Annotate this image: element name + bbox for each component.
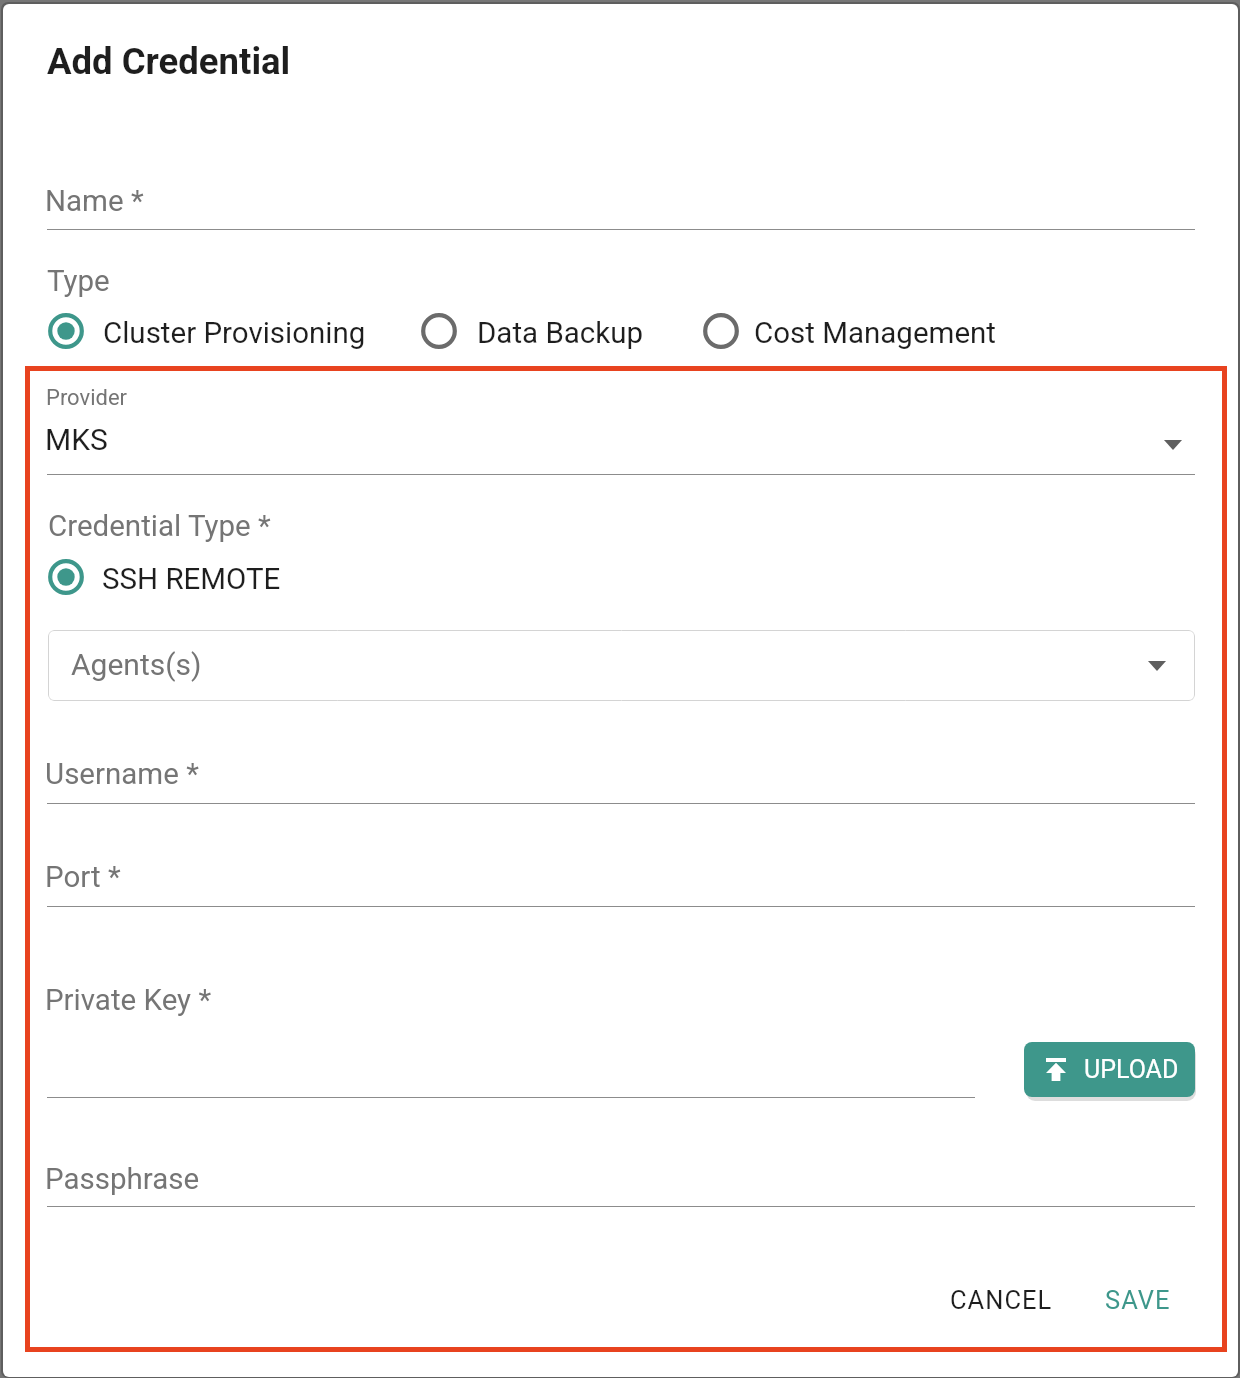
staticText: SAVE [1105, 1285, 1171, 1315]
staticText: Type [47, 264, 110, 299]
button[interactable]: Name [47, 176, 1195, 230]
button[interactable]: Username [47, 750, 1195, 804]
staticText: Data Backup [477, 316, 644, 351]
button[interactable]: UPLOAD [1024, 1042, 1195, 1097]
staticText: Cluster Provisioning [103, 316, 366, 351]
staticText: Cost Management [754, 316, 997, 351]
staticText: Name * [45, 184, 144, 219]
button[interactable] [44, 307, 364, 355]
staticText: UPLOAD [1084, 1055, 1179, 1084]
staticText: CANCEL [950, 1285, 1053, 1315]
staticText: Passphrase [45, 1162, 200, 1197]
button[interactable]: CANCEL [928, 1269, 1074, 1331]
button[interactable]: SAVE [1088, 1269, 1188, 1331]
button[interactable] [44, 553, 280, 601]
staticText: Credential Type * [48, 509, 271, 544]
staticText: MKS [45, 422, 108, 457]
button[interactable]: Private Key [47, 976, 975, 1098]
button[interactable]: Agents(s) [48, 630, 1195, 701]
button[interactable]: Provider, MKS [47, 383, 1195, 475]
staticText: Username * [45, 757, 199, 792]
button[interactable] [699, 307, 997, 355]
button[interactable]: Passphrase [47, 1155, 1195, 1207]
staticText: SSH REMOTE [102, 562, 281, 597]
button[interactable]: Port [47, 853, 1195, 907]
staticText: Add Credential [47, 40, 291, 83]
staticText: Port * [45, 860, 121, 895]
button[interactable] [417, 307, 642, 355]
staticText: Agents(s) [71, 647, 202, 682]
staticText: Provider [46, 385, 128, 411]
staticText: Private Key * [45, 983, 212, 1018]
